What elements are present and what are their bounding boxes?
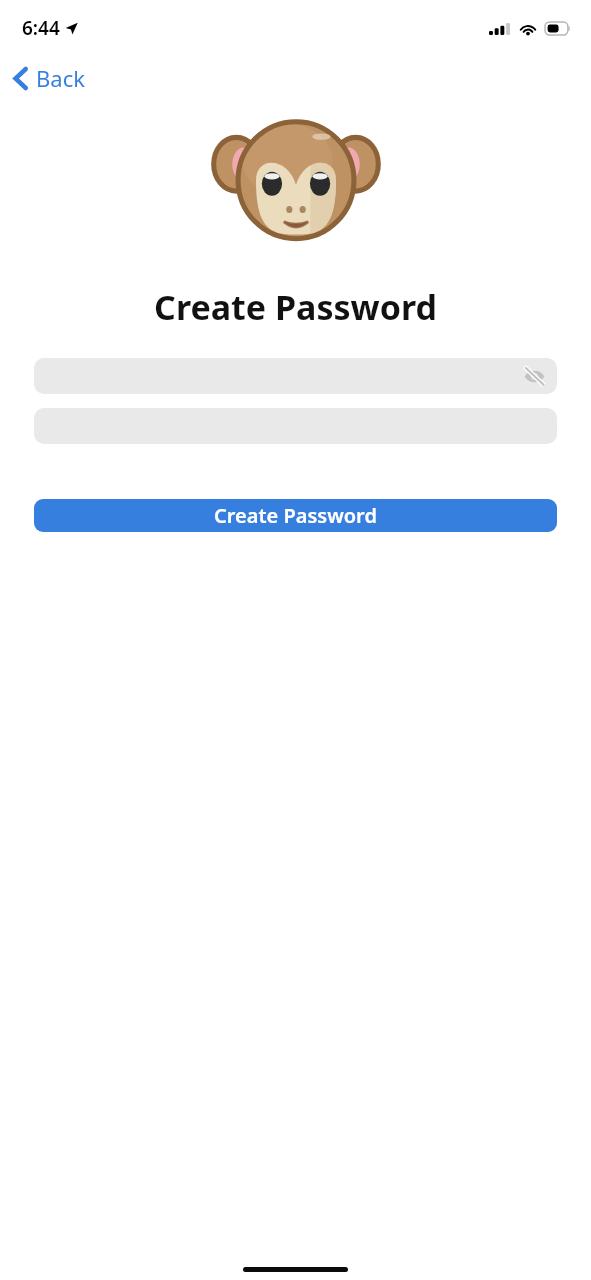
staticText: Back (36, 63, 85, 93)
staticText: Create Password (0, 284, 591, 330)
staticText: 6:44 (22, 15, 60, 41)
button[interactable]: Show password (34, 358, 557, 394)
button[interactable]: Show password (520, 362, 548, 390)
button[interactable]: Create Password (34, 499, 557, 532)
staticText: Create Password (214, 502, 377, 529)
button[interactable]: Back (4, 56, 101, 100)
